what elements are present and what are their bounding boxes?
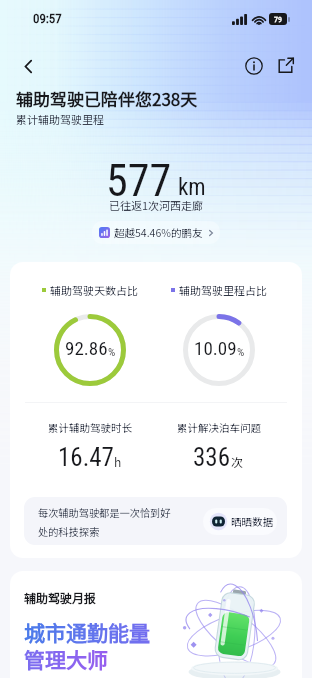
staticText: 辅助驾驶里程占比 (179, 282, 267, 298)
staticText: 超越54.46%的鹏友 (114, 225, 203, 240)
staticText: 79 (274, 15, 282, 24)
staticText: 累计辅助驾驶时长 (48, 420, 132, 435)
staticText: 16.47 (58, 443, 114, 472)
staticText: 577 (106, 155, 172, 207)
staticText: h (114, 453, 122, 470)
button[interactable]: Share (270, 50, 301, 81)
staticText: 管理大师 (24, 644, 108, 674)
staticText: 每次辅助驾驶都是一次恰到好处的科技探索 (38, 505, 176, 539)
staticText: 次 (231, 453, 244, 470)
button[interactable]: Back (12, 50, 44, 82)
staticText: 辅助驾驶已陪伴您238天 (16, 86, 198, 111)
staticText: 晒晒数据 (231, 514, 273, 529)
staticText: 辅助驾驶天数占比 (50, 282, 138, 298)
button[interactable]: 辅助驾驶月报 (10, 571, 302, 678)
button[interactable]: 超越54.46%的鹏友 (92, 221, 220, 244)
staticText: 城市通勤能量 (24, 617, 150, 647)
staticText: 辅助驾驶月报 (24, 589, 97, 606)
staticText: 已往返1次河西走廊 (0, 197, 312, 213)
button[interactable]: 晒晒数据 (203, 508, 277, 535)
staticText: 10.09 (194, 337, 237, 359)
staticText: % (108, 345, 116, 358)
staticText: 92.86 (65, 337, 108, 359)
staticText: km (178, 174, 206, 201)
button[interactable]: Info (238, 50, 269, 81)
staticText: 累计解决泊车问题 (177, 420, 261, 435)
staticText: 累计辅助驾驶里程 (16, 111, 104, 127)
staticText: 336 (193, 443, 231, 472)
staticText: 09:57 (33, 11, 62, 26)
staticText: % (237, 345, 245, 358)
